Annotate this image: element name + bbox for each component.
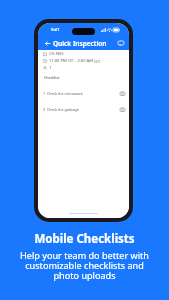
staticText: 1 Check the microwave <box>43 91 83 96</box>
staticText: Help your team do better with customizab… <box>0 249 169 282</box>
button[interactable]: Comments <box>116 39 125 48</box>
staticText: 11:00 PM <box>49 58 67 64</box>
staticText: Mobile Checklists <box>0 231 169 247</box>
button[interactable]: 2 Check the garbage <box>38 103 129 115</box>
button[interactable]: 1 Check the microwave <box>38 87 129 99</box>
staticText: 2 Check the garbage <box>43 107 79 112</box>
staticText: EDT <box>94 59 101 64</box>
staticText: 1 <box>49 65 52 71</box>
staticText: 9:41 <box>51 27 60 33</box>
staticText: Quick Inspection <box>53 39 107 48</box>
staticText: Checklist <box>44 75 60 80</box>
staticText: - 2:00 AM <box>75 58 93 64</box>
staticText: EDT <box>68 59 74 63</box>
staticText: CH-NSS <box>49 51 64 57</box>
button[interactable]: Back <box>43 39 52 48</box>
